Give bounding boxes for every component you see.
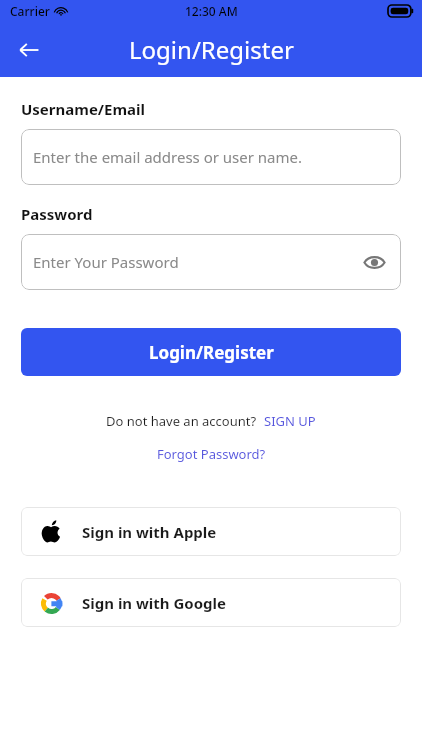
staticText: Enter the email address or user name. [33, 147, 303, 167]
staticText: Password [21, 204, 93, 224]
staticText: Login/Register [149, 341, 274, 364]
button[interactable]: Forgot Password? [157, 445, 266, 463]
staticText: Carrier [10, 3, 50, 19]
button[interactable]: Sign in with Apple [21, 507, 401, 556]
staticText: Username/Email [21, 99, 146, 119]
button[interactable]: Enter the email address or user name. [21, 129, 401, 185]
staticText: Login/Register [129, 33, 294, 66]
staticText: Enter Your Password [33, 252, 179, 272]
staticText: SIGN UP [264, 412, 316, 430]
button[interactable]: Sign in with Google [21, 578, 401, 627]
button[interactable]: Back [8, 29, 50, 71]
button[interactable]: Login/Register [21, 328, 401, 376]
staticText: Sign in with Apple [82, 522, 217, 542]
staticText: 12:30 AM [185, 3, 238, 19]
staticText: Sign in with Google [82, 593, 227, 613]
staticText: Do not have an account? [106, 412, 257, 430]
button[interactable]: Enter Your Password [21, 234, 401, 290]
staticText: Forgot Password? [157, 445, 266, 463]
button[interactable]: Show password [361, 249, 387, 275]
button[interactable]: SIGN UP [264, 412, 316, 430]
